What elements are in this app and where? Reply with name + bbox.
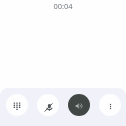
button[interactable]: More options [99, 94, 121, 116]
button[interactable]: Speaker [68, 94, 90, 116]
button[interactable]: Dialpad [6, 94, 28, 116]
staticText: 00:04 [53, 1, 73, 11]
button[interactable]: Mute microphone [37, 94, 59, 116]
